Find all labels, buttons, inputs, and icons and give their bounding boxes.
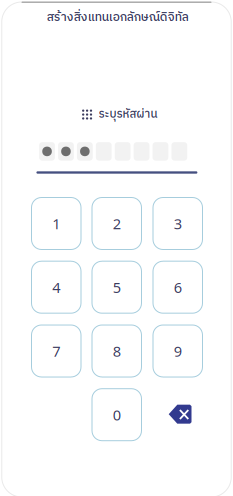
- button[interactable]: 7: [31, 325, 81, 377]
- staticText: 4: [52, 277, 60, 297]
- staticText: 3: [174, 214, 182, 233]
- staticText: 1: [52, 214, 60, 233]
- button[interactable]: 0: [92, 389, 141, 441]
- button[interactable]: 3: [153, 197, 202, 249]
- button[interactable]: 6: [153, 261, 202, 313]
- button[interactable]: Delete: [155, 388, 205, 440]
- staticText: 6: [174, 277, 182, 297]
- staticText: 5: [113, 277, 121, 297]
- button[interactable]: 9: [153, 325, 202, 377]
- button[interactable]: 2: [92, 197, 141, 249]
- button[interactable]: 4: [31, 261, 81, 313]
- staticText: 9: [174, 341, 182, 361]
- button[interactable]: 1: [31, 197, 81, 249]
- staticText: ระบุรหัสผ่าน: [98, 105, 157, 124]
- staticText: สร้างสิ่งแทนเอกลักษณ์ดิจิทัล: [47, 8, 189, 27]
- staticText: 8: [113, 341, 121, 361]
- staticText: 0: [113, 405, 121, 424]
- button[interactable]: 5: [92, 261, 141, 313]
- staticText: 2: [113, 214, 121, 233]
- button[interactable]: 8: [92, 325, 141, 377]
- staticText: 7: [52, 341, 60, 361]
